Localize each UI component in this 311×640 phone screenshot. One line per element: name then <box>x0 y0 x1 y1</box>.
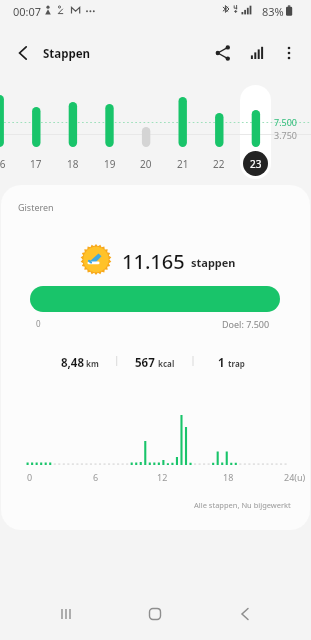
button[interactable]: Charts <box>242 38 272 68</box>
staticText: 21 <box>177 157 189 170</box>
button[interactable]: Share <box>208 38 238 68</box>
staticText: 23 <box>250 157 262 171</box>
button[interactable]: Back <box>228 597 262 631</box>
staticText: 24(u) <box>284 471 306 483</box>
staticText: 83% <box>262 4 284 19</box>
staticText: 18 <box>223 471 234 483</box>
staticText: 19 <box>104 157 116 170</box>
button[interactable]: 23 <box>243 151 268 176</box>
staticText: 22 <box>213 157 225 170</box>
staticText: Gisteren <box>18 201 54 213</box>
staticText: 12 <box>157 471 168 483</box>
staticText: 20 <box>140 157 152 170</box>
staticText: 17 <box>30 157 42 170</box>
staticText: 1 <box>218 355 225 371</box>
button[interactable]: Back <box>8 38 38 68</box>
staticText: 6 <box>93 471 99 483</box>
button[interactable]: More options <box>274 38 304 68</box>
staticText: Alle stappen, Nu bijgewerkt <box>194 500 291 510</box>
button[interactable]: Home <box>138 597 172 631</box>
staticText: 18 <box>67 157 79 170</box>
staticText: 11.165 <box>122 248 185 275</box>
staticText: 0 <box>27 471 33 483</box>
staticText: 16 <box>0 157 6 170</box>
staticText: 3.750 <box>274 129 298 141</box>
staticText: 8,48 <box>61 355 85 371</box>
staticText: stappen <box>191 255 236 270</box>
staticText: Stappen <box>43 46 91 62</box>
staticText: kcal <box>158 358 175 369</box>
staticText: km <box>86 358 99 369</box>
staticText: 7.500 <box>274 116 298 128</box>
staticText: 567 <box>135 355 155 371</box>
staticText: 0 <box>36 318 41 329</box>
staticText: Doel: 7.500 <box>222 318 270 330</box>
staticText: 00:07 <box>13 4 42 19</box>
button[interactable]: Recents <box>49 597 83 631</box>
staticText: trap <box>228 358 245 369</box>
